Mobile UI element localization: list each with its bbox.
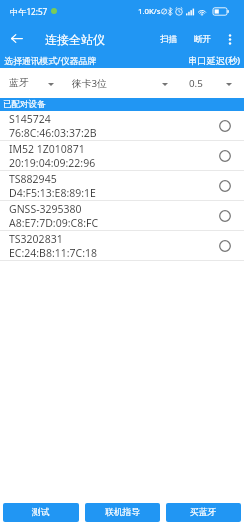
staticText: A8:E7:7D:09:C8:FC: [9, 216, 99, 230]
staticText: 连接全站仪: [45, 32, 105, 47]
button[interactable]: 断开: [186, 26, 220, 53]
staticText: EC:24:B8:11:7C:18: [9, 246, 98, 260]
button[interactable]: TS3202831: [0, 231, 244, 261]
staticText: D4:F5:13:E8:89:1E: [9, 186, 96, 200]
staticText: 选择通讯模式/仪器品牌: [4, 54, 97, 66]
staticText: 蓝牙: [9, 77, 29, 89]
staticText: 买蓝牙: [190, 507, 217, 518]
staticText: TS3202831: [9, 232, 63, 246]
staticText: 徕卡3位: [72, 77, 107, 90]
staticText: 扫描: [160, 34, 178, 45]
button[interactable]: Back: [2, 23, 32, 53]
staticText: 已配对设备: [3, 99, 46, 110]
button[interactable]: 联机指导: [85, 503, 160, 522]
staticText: 联机指导: [105, 507, 141, 518]
button[interactable]: 扫描: [152, 26, 186, 53]
button[interactable]: TS882945: [0, 171, 244, 201]
button[interactable]: GNSS-3295380: [0, 201, 244, 231]
button[interactable]: More options: [220, 24, 240, 54]
staticText: 76:8C:46:03:37:2B: [9, 126, 97, 140]
staticText: IM52 1Z010871: [9, 142, 85, 156]
staticText: GNSS-3295380: [9, 202, 82, 216]
staticText: 中午12:57: [10, 6, 48, 17]
staticText: 0.5: [189, 77, 203, 90]
staticText: 串口延迟(秒): [188, 54, 241, 66]
button[interactable]: S145724: [0, 111, 244, 141]
staticText: 1.0K/s: [138, 6, 161, 17]
staticText: TS882945: [9, 172, 57, 186]
staticText: 断开: [194, 34, 212, 45]
button[interactable]: 测试: [3, 503, 79, 522]
button[interactable]: IM52 1Z010871: [0, 141, 244, 171]
staticText: S145724: [9, 112, 51, 126]
button[interactable]: 买蓝牙: [166, 503, 241, 522]
staticText: 测试: [32, 507, 50, 518]
staticText: 20:19:04:09:22:96: [9, 156, 96, 170]
